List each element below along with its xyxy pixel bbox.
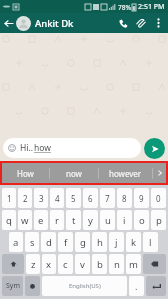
button[interactable]: f [58,232,73,252]
staticText: 8 [122,193,127,204]
button[interactable]: c [58,254,73,274]
staticText: b [97,258,103,271]
staticText: c [63,258,68,271]
button[interactable]: h [92,232,107,252]
button[interactable]: 8 [117,188,132,208]
staticText: 78% [118,3,131,12]
staticText: n [114,258,120,271]
button[interactable]: More suggestions [153,163,166,183]
staticText: 7 [105,193,110,204]
staticText: i [123,214,126,227]
staticText: r [55,214,59,227]
button[interactable]: 7 [100,188,115,208]
staticText: x [46,258,52,271]
staticText: 6 [88,193,93,204]
staticText: Ankit Dk [35,17,74,30]
button[interactable]: j [109,232,124,252]
staticText: k [131,236,137,249]
staticText: a [13,236,19,249]
button[interactable]: More options [150,15,166,31]
staticText: t [72,214,76,227]
button[interactable]: v [75,254,90,274]
button[interactable]: . [129,276,144,296]
button[interactable]: Sym [2,276,23,296]
staticText: p [156,214,162,227]
button[interactable]: 6 [83,188,98,208]
staticText: h [97,236,103,249]
staticText: z [31,258,36,271]
button[interactable]: k [126,232,141,252]
button[interactable]: 3 [34,188,48,208]
staticText: how [34,142,51,154]
button[interactable]: s [25,232,39,252]
staticText: f [64,236,68,249]
button[interactable]: Send [144,138,165,159]
staticText: w [21,214,29,227]
button[interactable]: Hi.. [3,138,141,158]
button[interactable]: a [9,232,23,252]
button[interactable]: z [26,254,40,274]
button[interactable]: Backspace [143,254,166,274]
staticText: How [17,168,34,179]
button[interactable]: w [18,210,32,230]
staticText: 9 [139,193,144,204]
staticText: 0 [156,193,161,204]
button[interactable]: Contact photo [16,16,31,31]
staticText: j [115,236,118,249]
staticText: q [6,214,12,227]
button[interactable]: g [75,232,90,252]
button[interactable]: 9 [134,188,149,208]
button[interactable]: e [34,210,48,230]
button[interactable]: 1 [2,188,16,208]
button[interactable]: Shift [2,254,24,274]
button[interactable]: y [83,210,98,230]
staticText: 2 [23,193,28,204]
button[interactable]: 2 [18,188,32,208]
staticText: y [88,214,93,227]
staticText: 4 [55,193,60,204]
staticText: 5 [71,193,76,204]
button[interactable]: English(US) [42,276,127,296]
button[interactable]: however [99,163,152,183]
staticText: v [80,258,85,271]
button[interactable]: i [117,210,132,230]
button[interactable]: 0 [151,188,166,208]
staticText: now [66,168,82,179]
staticText: d [46,236,52,249]
button[interactable]: r [50,210,64,230]
button[interactable]: 5 [66,188,81,208]
button[interactable]: Settings [25,276,40,296]
staticText: 3 [39,193,44,204]
staticText: s [30,236,35,249]
button[interactable]: m [126,254,141,274]
button[interactable]: Attach [132,14,150,32]
button[interactable]: Back [0,15,16,31]
staticText: English(US) [69,282,101,290]
button[interactable]: Call [114,14,132,32]
button[interactable]: q [2,210,16,230]
staticText: however [109,168,142,179]
button[interactable]: l [143,232,158,252]
button[interactable]: d [41,232,56,252]
button[interactable]: o [134,210,149,230]
staticText: o [139,214,145,227]
staticText: u [105,214,111,227]
staticText: 1 [7,193,12,204]
staticText: 2:51 PM [138,2,165,12]
staticText: . [135,280,138,292]
button[interactable]: b [92,254,107,274]
button[interactable]: Ankit Dk [35,17,114,30]
button[interactable]: t [66,210,81,230]
button[interactable]: x [42,254,56,274]
staticText: e [38,214,44,227]
button[interactable]: u [100,210,115,230]
button[interactable]: now [50,163,98,183]
staticText: Sym [6,281,20,291]
button[interactable]: Enter [146,276,166,296]
button[interactable]: 4 [50,188,64,208]
staticText: l [149,236,152,249]
staticText: m [129,258,138,271]
button[interactable]: p [151,210,166,230]
button[interactable]: n [109,254,124,274]
button[interactable]: How [2,163,49,183]
